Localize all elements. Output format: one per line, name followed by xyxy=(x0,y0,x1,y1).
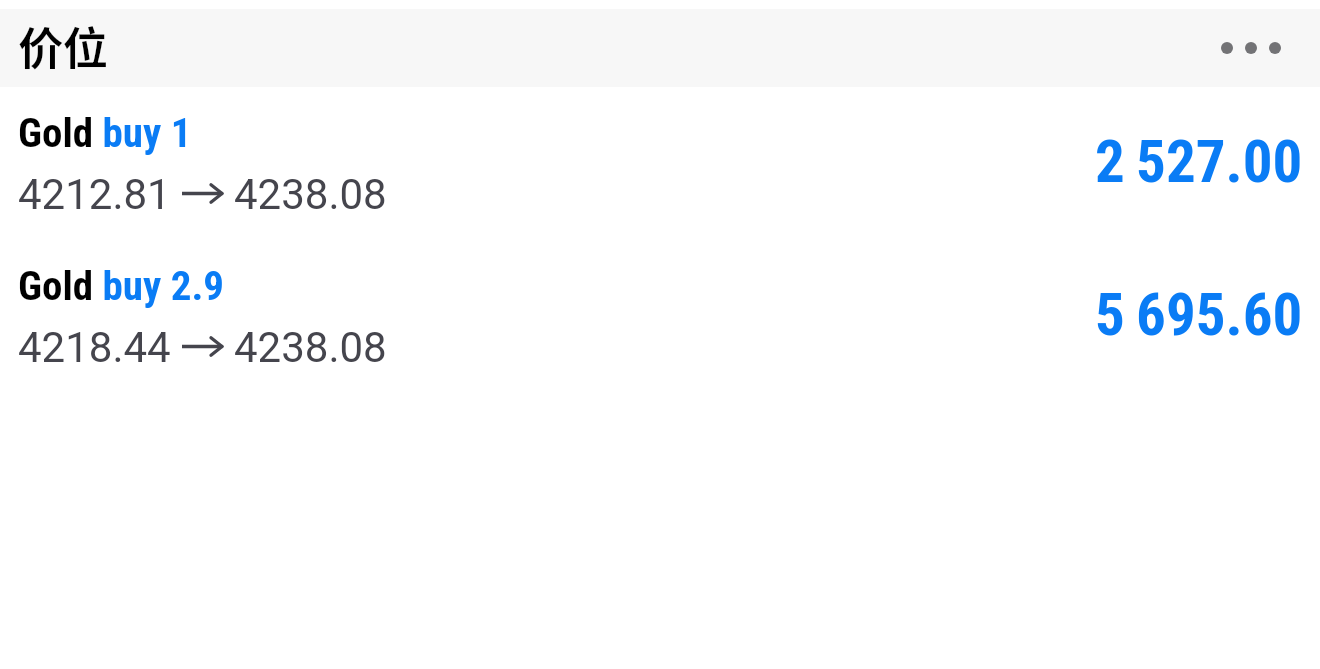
staticText: Gold buy 1 xyxy=(18,109,192,157)
button[interactable]: More options xyxy=(1209,30,1293,66)
button[interactable]: Gold buy 1 xyxy=(0,87,1320,240)
staticText: 4212.81 xyxy=(18,170,171,219)
staticText: 价位 xyxy=(18,13,109,78)
staticText: 5 695.60 xyxy=(1095,280,1303,349)
button[interactable]: Gold buy 2.9 xyxy=(0,240,1320,393)
staticText: 2 527.00 xyxy=(1095,127,1303,196)
staticText: 4238.08 xyxy=(234,170,387,219)
staticText: 4218.44 xyxy=(18,323,171,372)
staticText: Gold buy 2.9 xyxy=(18,262,225,310)
staticText: 4238.08 xyxy=(234,323,387,372)
